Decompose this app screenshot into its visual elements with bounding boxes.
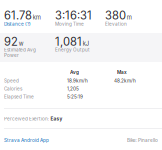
staticText: Calories [4, 86, 22, 92]
staticText: 48.2km/h [114, 78, 136, 84]
staticText: w [19, 40, 24, 47]
staticText: 61.78 [4, 9, 32, 22]
staticText: 1,205 [67, 86, 79, 92]
staticText: Estimated Avg [4, 47, 36, 53]
staticText: Elapsed Time [4, 94, 34, 100]
button[interactable]: Strava Android App [4, 138, 49, 143]
staticText: 3:16:31 [55, 9, 92, 22]
staticText: 5:25:19 [67, 94, 83, 100]
staticText: 1,081 [55, 35, 82, 49]
staticText: Distance (?) [4, 21, 31, 27]
staticText: Max [117, 69, 127, 75]
staticText: Bike: Pinarello [127, 138, 158, 143]
staticText: Moving Time [55, 21, 84, 27]
staticText: 380 [105, 9, 126, 22]
staticText: m [127, 14, 132, 21]
staticText: Elevation [105, 21, 127, 27]
staticText: kJ [83, 40, 89, 47]
staticText: 18.9km/h [67, 78, 88, 84]
staticText: Power [4, 52, 19, 58]
staticText: Avg [70, 69, 79, 75]
staticText: Perceived Exertion: [4, 116, 49, 122]
staticText: Speed [4, 78, 19, 84]
staticText: km [33, 14, 41, 21]
staticText: Easy [50, 116, 62, 122]
staticText: 92 [4, 35, 18, 49]
staticText: Strava Android App [4, 138, 49, 143]
staticText: Energy Output [55, 47, 90, 53]
